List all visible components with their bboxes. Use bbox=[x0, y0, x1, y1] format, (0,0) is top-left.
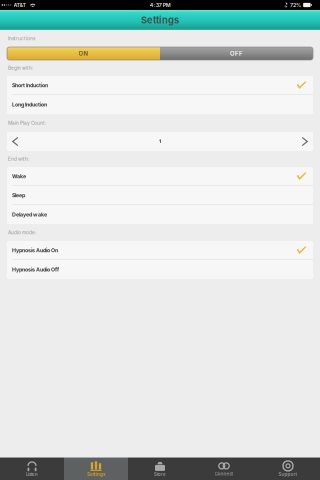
staticText: Audio mode: bbox=[8, 230, 36, 235]
staticText: Main Play Count: bbox=[8, 120, 46, 126]
staticText: Listen bbox=[26, 472, 38, 477]
button[interactable]: OFF bbox=[160, 47, 313, 60]
button[interactable]: Connect bbox=[192, 457, 256, 480]
staticText: Instructions bbox=[8, 36, 35, 41]
staticText: OFF bbox=[230, 50, 243, 57]
staticText: Settings bbox=[87, 472, 105, 477]
staticText: Short Induction bbox=[12, 82, 48, 88]
staticText: Hypnosis Audio On bbox=[12, 247, 58, 253]
button[interactable]: Store bbox=[128, 457, 192, 480]
button[interactable]: Hypnosis Audio Off bbox=[7, 260, 313, 279]
staticText: Connect bbox=[214, 471, 233, 477]
button[interactable]: Listen bbox=[0, 457, 64, 480]
button[interactable]: Increase bbox=[253, 132, 313, 151]
button[interactable]: ON bbox=[7, 47, 160, 60]
button[interactable]: Support bbox=[256, 457, 320, 480]
staticText: Hypnosis Audio Off bbox=[12, 266, 59, 273]
staticText: AT&T bbox=[13, 2, 26, 8]
staticText: Support bbox=[278, 472, 297, 477]
staticText: Sleep bbox=[12, 192, 25, 198]
staticText: 1 bbox=[159, 138, 161, 145]
staticText: Long Induction bbox=[12, 101, 47, 108]
staticText: 72% bbox=[290, 2, 301, 8]
button[interactable]: Long Induction bbox=[7, 95, 313, 114]
staticText: End with: bbox=[8, 156, 29, 162]
button[interactable]: Settings bbox=[64, 457, 128, 480]
button[interactable]: Wake bbox=[7, 167, 313, 186]
staticText: Delayed wake bbox=[12, 211, 47, 218]
staticText: Begin with: bbox=[8, 65, 33, 71]
button[interactable]: Short Induction bbox=[7, 76, 313, 95]
staticText: Store bbox=[154, 472, 166, 477]
staticText: ON bbox=[78, 50, 88, 57]
button[interactable]: Delayed wake bbox=[7, 205, 313, 224]
staticText: 4:37 PM bbox=[150, 2, 171, 8]
button[interactable]: Sleep bbox=[7, 186, 313, 205]
button[interactable]: Decrease bbox=[7, 132, 67, 151]
staticText: Settings bbox=[141, 14, 179, 26]
staticText: Wake bbox=[12, 173, 26, 179]
button[interactable]: Hypnosis Audio On bbox=[7, 241, 313, 260]
